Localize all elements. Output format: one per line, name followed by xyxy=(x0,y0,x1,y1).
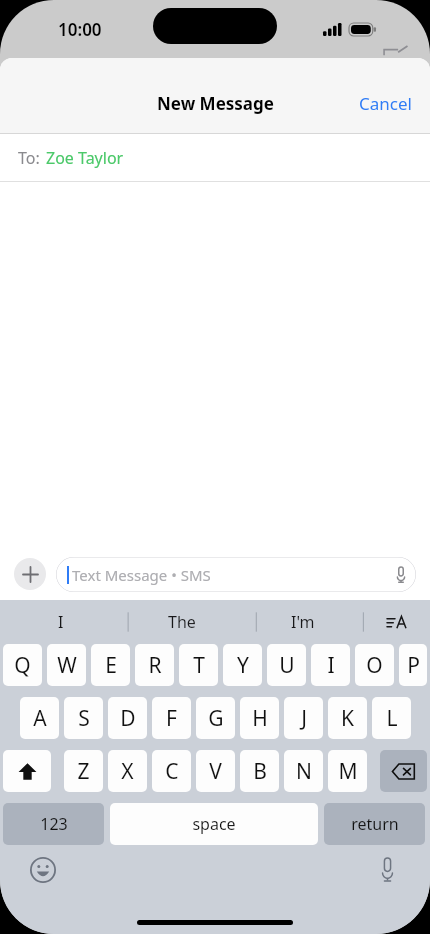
staticText: S xyxy=(78,704,90,733)
button[interactable]: Text Message • SMS xyxy=(56,557,416,592)
button[interactable]: Formatting xyxy=(363,600,430,644)
button[interactable]: J xyxy=(284,697,323,739)
button[interactable]: D xyxy=(108,697,147,739)
button[interactable]: H xyxy=(240,697,279,739)
staticText: Z xyxy=(77,757,90,786)
staticText: I xyxy=(58,611,64,633)
staticText: B xyxy=(253,757,267,786)
staticText: 123 xyxy=(40,813,68,835)
staticText: 10:00 xyxy=(58,18,102,41)
staticText: Zoe Taylor xyxy=(46,147,124,169)
staticText: W xyxy=(57,651,77,680)
button[interactable]: Backspace xyxy=(380,750,427,792)
button[interactable]: K xyxy=(328,697,367,739)
staticText: L xyxy=(386,704,398,733)
button[interactable]: E xyxy=(91,644,130,686)
staticText: E xyxy=(105,651,117,680)
staticText: Y xyxy=(237,651,249,680)
staticText: return xyxy=(351,813,399,835)
staticText: I xyxy=(327,651,335,680)
button[interactable]: S xyxy=(64,697,103,739)
button[interactable]: Dictation xyxy=(372,855,402,885)
button[interactable]: Dictate xyxy=(397,567,405,583)
button[interactable]: Cancel xyxy=(341,86,430,121)
staticText: Text Message • SMS xyxy=(72,565,211,585)
button[interactable]: L xyxy=(372,697,411,739)
button[interactable]: X xyxy=(108,750,147,792)
staticText: I'm xyxy=(291,611,315,633)
button[interactable]: I xyxy=(0,600,121,644)
staticText: Cancel xyxy=(359,92,412,115)
staticText: T xyxy=(193,651,205,680)
staticText: A xyxy=(33,704,47,733)
staticText: U xyxy=(279,651,295,680)
button[interactable]: F xyxy=(152,697,191,739)
staticText: F xyxy=(166,704,177,733)
button[interactable]: G xyxy=(196,697,235,739)
staticText: R xyxy=(148,651,162,680)
button[interactable]: space xyxy=(110,803,318,845)
button[interactable]: Add attachment xyxy=(14,558,46,590)
button[interactable]: I xyxy=(311,644,350,686)
staticText: K xyxy=(341,704,354,733)
staticText: D xyxy=(120,704,136,733)
button[interactable]: B xyxy=(240,750,279,792)
button[interactable]: M xyxy=(328,750,367,792)
staticText: X xyxy=(121,757,134,786)
button[interactable]: 123 xyxy=(3,803,104,845)
button[interactable]: N xyxy=(284,750,323,792)
staticText: space xyxy=(192,813,236,835)
button[interactable]: C xyxy=(152,750,191,792)
staticText: J xyxy=(301,704,307,733)
button[interactable]: I'm xyxy=(242,600,363,644)
button[interactable]: U xyxy=(267,644,306,686)
button[interactable]: The xyxy=(121,600,242,644)
staticText: H xyxy=(252,704,268,733)
staticText: C xyxy=(165,757,179,786)
button[interactable]: return xyxy=(324,803,425,845)
button[interactable]: Emoji xyxy=(28,855,58,885)
staticText: V xyxy=(209,757,222,786)
button[interactable]: R xyxy=(135,644,174,686)
button[interactable]: V xyxy=(196,750,235,792)
staticText: New Message xyxy=(157,92,274,115)
staticText: To: xyxy=(18,147,40,169)
staticText: M xyxy=(338,757,358,786)
staticText: O xyxy=(366,651,383,680)
button[interactable]: Q xyxy=(3,644,42,686)
button[interactable]: W xyxy=(47,644,86,686)
staticText: Q xyxy=(14,651,31,680)
button[interactable]: Y xyxy=(223,644,262,686)
staticText: N xyxy=(296,757,312,786)
button[interactable]: A xyxy=(20,697,59,739)
button[interactable]: Z xyxy=(64,750,103,792)
button[interactable]: Shift xyxy=(3,750,51,792)
button[interactable]: P xyxy=(399,644,427,686)
button[interactable]: T xyxy=(179,644,218,686)
staticText: The xyxy=(168,611,196,633)
staticText: G xyxy=(208,704,224,733)
staticText: P xyxy=(407,651,420,680)
button[interactable]: O xyxy=(355,644,394,686)
button[interactable]: To: xyxy=(0,134,430,181)
